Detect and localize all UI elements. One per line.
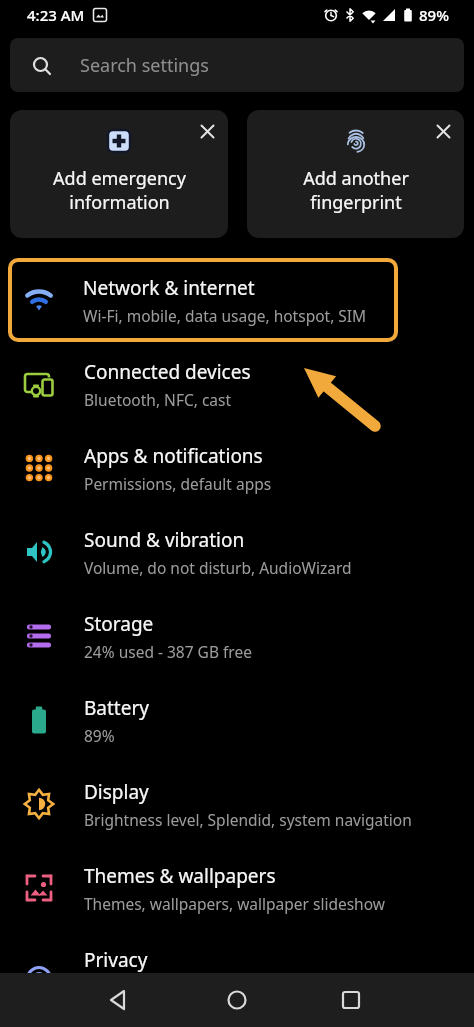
staticText: Volume, do not disturb, AudioWizard bbox=[84, 557, 352, 578]
staticText: Permissions, account activity bbox=[84, 977, 294, 998]
staticText: Network & internet bbox=[83, 275, 255, 301]
button[interactable]: Privacy bbox=[0, 930, 474, 1014]
button[interactable] bbox=[316, 973, 474, 1027]
button[interactable]: Search settings bbox=[10, 38, 464, 92]
staticText: 89% bbox=[84, 725, 115, 746]
button[interactable]: Add emergency information bbox=[10, 110, 228, 238]
button[interactable]: Storage bbox=[0, 594, 474, 678]
staticText: Sound & vibration bbox=[84, 527, 245, 553]
staticText: Add emergency information bbox=[53, 166, 186, 214]
staticText: Display bbox=[84, 779, 149, 805]
staticText: 4:23 AM bbox=[27, 5, 85, 25]
button[interactable]: Apps & notifications bbox=[0, 426, 474, 510]
button[interactable] bbox=[158, 973, 316, 1027]
staticText: Connected devices bbox=[84, 359, 251, 385]
staticText: Permissions, default apps bbox=[84, 473, 272, 494]
button[interactable] bbox=[431, 119, 455, 143]
staticText: 24% used - 387 GB free bbox=[84, 641, 252, 662]
staticText: Themes & wallpapers bbox=[84, 863, 276, 889]
staticText: Wi-Fi, mobile, data usage, hotspot, SIM bbox=[83, 305, 367, 326]
staticText: Bluetooth, NFC, cast bbox=[84, 389, 232, 410]
staticText: Privacy bbox=[84, 947, 148, 973]
button[interactable]: Network & internet bbox=[8, 258, 398, 342]
staticText: Search settings bbox=[80, 53, 209, 78]
staticText: Add another fingerprint bbox=[303, 166, 409, 214]
button[interactable]: Themes & wallpapers bbox=[0, 846, 474, 930]
staticText: Brightness level, Splendid, system navig… bbox=[84, 809, 412, 830]
staticText: 89% bbox=[419, 5, 449, 25]
staticText: Apps & notifications bbox=[84, 443, 263, 469]
staticText: Storage bbox=[84, 611, 154, 637]
staticText: Battery bbox=[84, 695, 149, 721]
button[interactable]: Display bbox=[0, 762, 474, 846]
button[interactable]: Battery bbox=[0, 678, 474, 762]
button[interactable] bbox=[0, 973, 158, 1027]
button[interactable] bbox=[195, 119, 219, 143]
button[interactable]: Connected devices bbox=[0, 342, 474, 426]
button[interactable]: Sound & vibration bbox=[0, 510, 474, 594]
staticText: Themes, wallpapers, wallpaper slideshow bbox=[84, 893, 385, 914]
button[interactable]: Add another fingerprint bbox=[247, 110, 464, 238]
